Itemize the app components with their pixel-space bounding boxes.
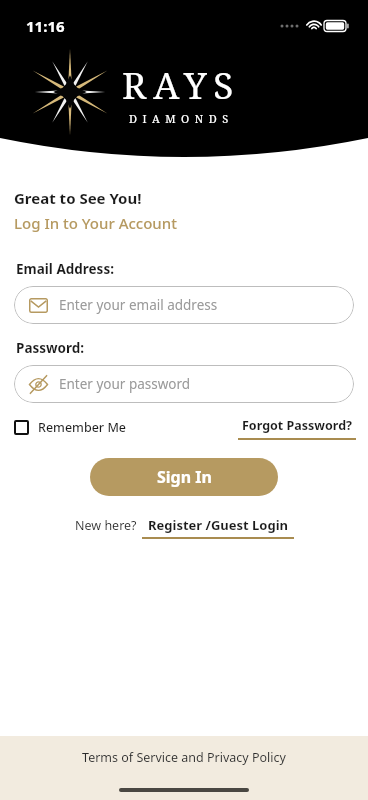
staticText: Forgot Password? (242, 417, 353, 434)
staticText: Enter your password (59, 375, 191, 393)
staticText: Remember Me (38, 419, 127, 436)
button[interactable]: Register /Guest Login (142, 516, 294, 539)
button[interactable]: Terms of Service and Privacy Policy (82, 749, 286, 766)
button[interactable]: Enter your email address (14, 286, 354, 324)
staticText: Sign In (157, 466, 212, 488)
staticText: RAYS (122, 59, 241, 109)
staticText: Log In to Your Account (14, 213, 177, 233)
staticText: Register /Guest Login (148, 516, 289, 534)
staticText: New here? (75, 517, 137, 534)
button[interactable]: Sign In (90, 458, 278, 496)
button[interactable]: Forgot Password? (238, 417, 356, 440)
staticText: 11:16 (26, 16, 65, 36)
staticText: Great to See You! (14, 188, 142, 208)
staticText: Enter your email address (59, 296, 218, 314)
button[interactable]: Remember Me (14, 417, 127, 438)
staticText: DIAMONDS (129, 111, 234, 126)
staticText: Password: (16, 339, 85, 357)
staticText: Email Address: (16, 260, 114, 278)
button[interactable]: Enter your password (14, 365, 354, 403)
